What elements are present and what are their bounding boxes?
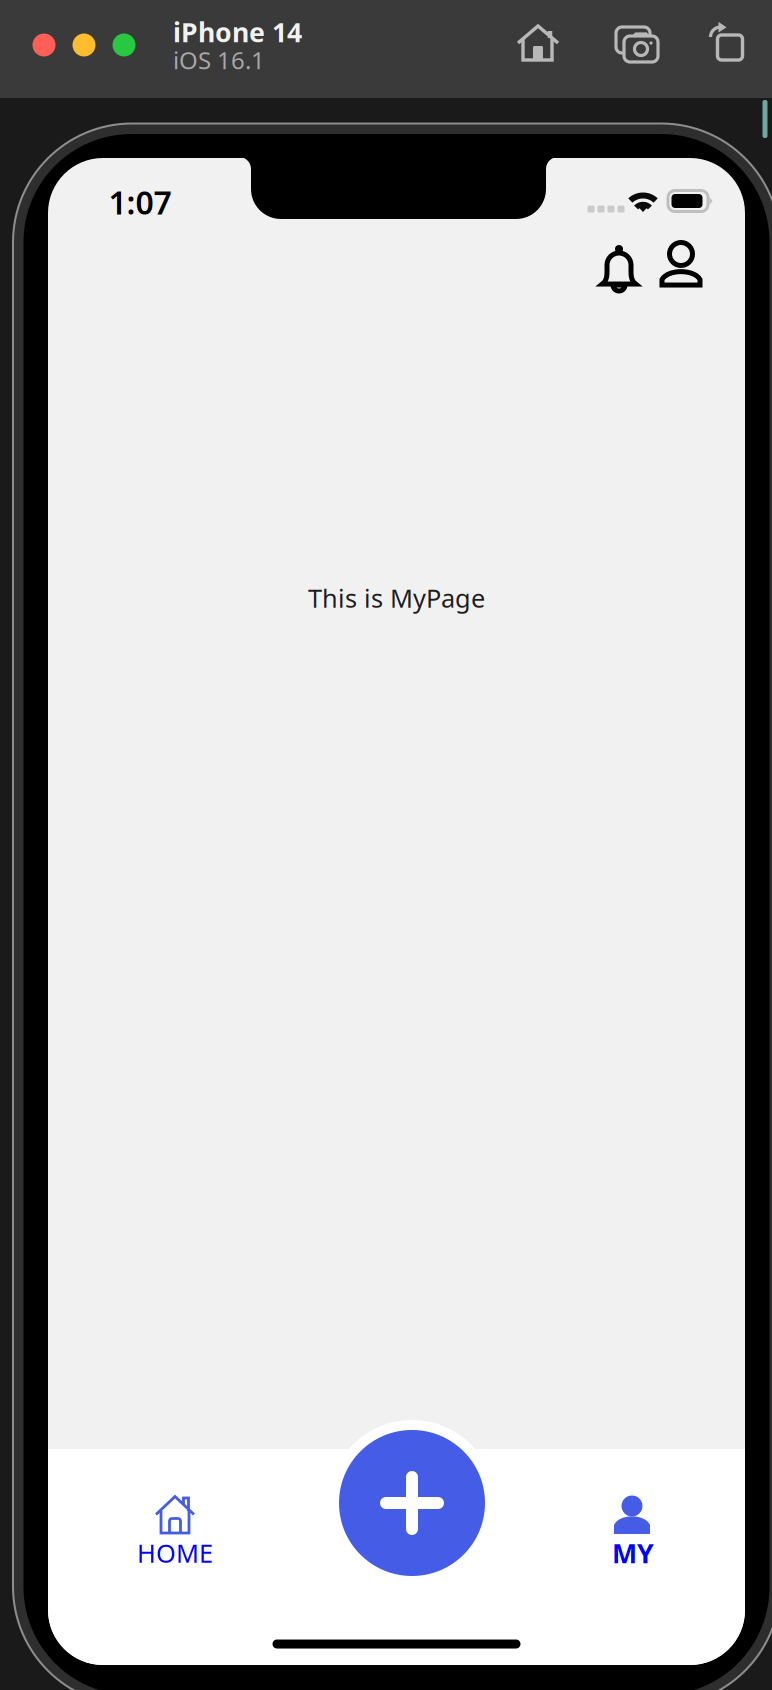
button[interactable]: Screenshot bbox=[0, 0, 772, 1690]
button[interactable]: Home bbox=[0, 0, 772, 1690]
staticText: 1:07 bbox=[108, 181, 171, 223]
button[interactable]: HOME bbox=[0, 0, 772, 1690]
button[interactable]: Account bbox=[0, 0, 772, 1690]
button[interactable]: MY bbox=[0, 0, 772, 1690]
staticText: HOME bbox=[137, 1536, 213, 1570]
button[interactable]: Rotate bbox=[0, 0, 772, 1690]
staticText: MY bbox=[612, 1535, 654, 1571]
button[interactable]: Notifications bbox=[0, 0, 772, 1690]
staticText: iPhone 14 bbox=[173, 14, 302, 50]
staticText: This is MyPage bbox=[308, 581, 485, 615]
staticText: iOS 16.1 bbox=[173, 44, 265, 76]
button[interactable]: Add bbox=[329, 1420, 495, 1586]
